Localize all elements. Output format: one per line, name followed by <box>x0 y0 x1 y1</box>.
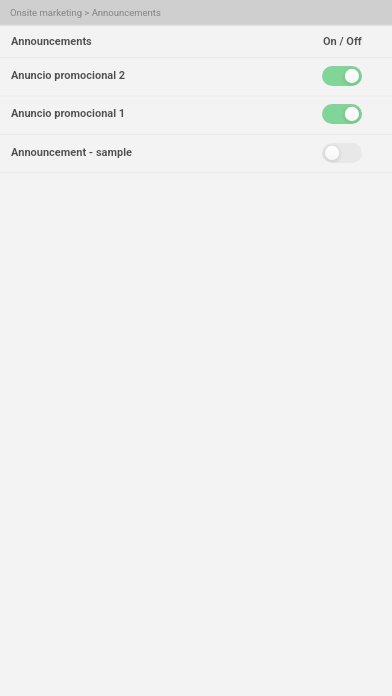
button[interactable]: Anuncio promocional 1 <box>0 95 392 133</box>
button[interactable]: Anuncio promocional 2: on <box>322 66 362 86</box>
staticText: Announcements <box>11 35 92 48</box>
button[interactable]: Announcement - sample: off <box>322 143 362 163</box>
button[interactable]: Onsite marketing > Announcements <box>0 0 392 24</box>
button[interactable]: Anuncio promocional 1: on <box>322 104 362 124</box>
staticText: Anuncio promocional 1 <box>11 107 126 120</box>
staticText: On / Off <box>323 35 362 48</box>
staticText: Onsite marketing > Announcements <box>10 7 161 18</box>
button[interactable]: Anuncio promocional 2 <box>0 57 392 95</box>
staticText: Announcement - sample <box>11 146 133 159</box>
button[interactable]: Announcement - sample <box>0 134 392 172</box>
staticText: Anuncio promocional 2 <box>11 69 126 82</box>
